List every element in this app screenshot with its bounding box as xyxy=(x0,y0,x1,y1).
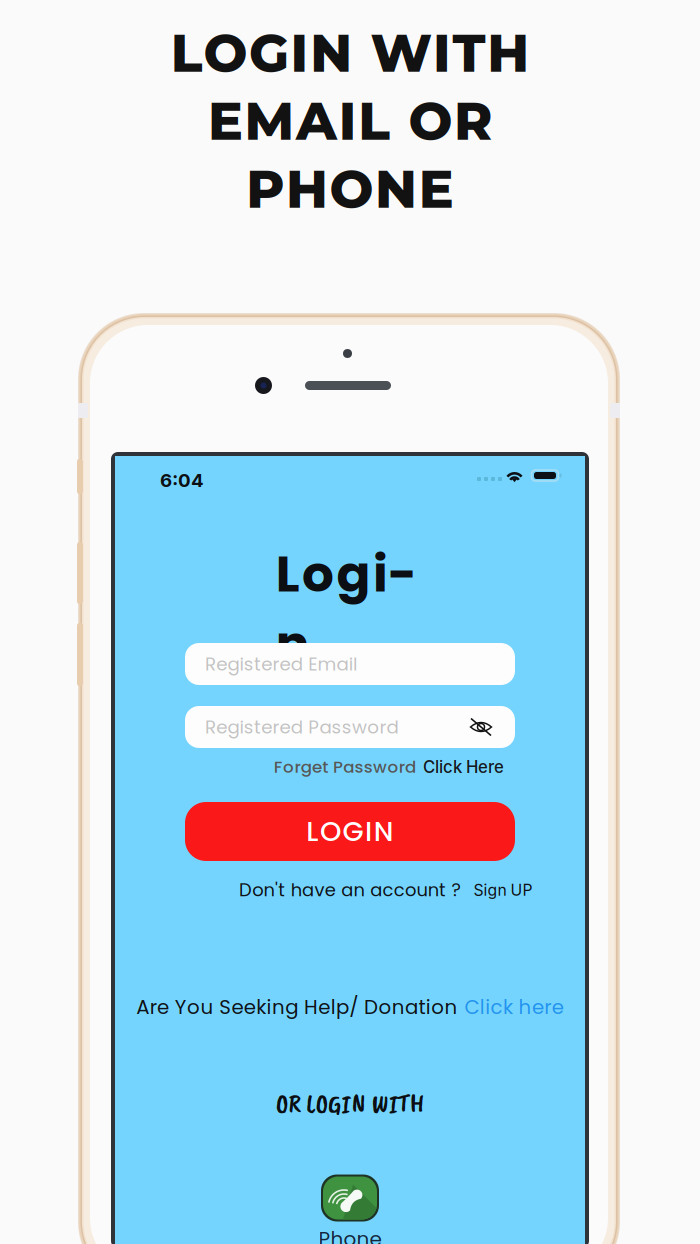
button[interactable]: Registered Email xyxy=(185,643,515,685)
button[interactable]: Sign UP xyxy=(474,880,533,899)
button[interactable]: Phone xyxy=(318,1175,381,1244)
staticText: OR LOGIN WITH xyxy=(276,1088,424,1120)
staticText: Registered Password xyxy=(205,714,399,740)
button[interactable]: Click here xyxy=(464,993,564,1021)
staticText: Don't have an account ? xyxy=(239,877,461,902)
staticText: Forget Password xyxy=(274,755,416,779)
staticText: PHONE xyxy=(246,157,454,221)
button[interactable]: LOGIN xyxy=(185,802,515,861)
staticText: 6:04 xyxy=(160,469,204,492)
staticText: Click Here xyxy=(423,757,504,777)
staticText: Phone xyxy=(318,1225,381,1244)
staticText: LOGIN WITH xyxy=(171,21,529,85)
staticText: Click here xyxy=(464,993,564,1021)
staticText: LOGIN xyxy=(306,812,394,851)
staticText: Are You Seeking Help/ Donation xyxy=(136,993,457,1021)
staticText: Sign UP xyxy=(474,880,533,899)
staticText: Registered Email xyxy=(205,651,357,677)
staticText: Login xyxy=(276,539,424,609)
staticText: EMAIL OR xyxy=(208,89,492,153)
button[interactable]: Registered Password xyxy=(185,706,515,748)
button[interactable]: Click Here xyxy=(423,757,504,777)
